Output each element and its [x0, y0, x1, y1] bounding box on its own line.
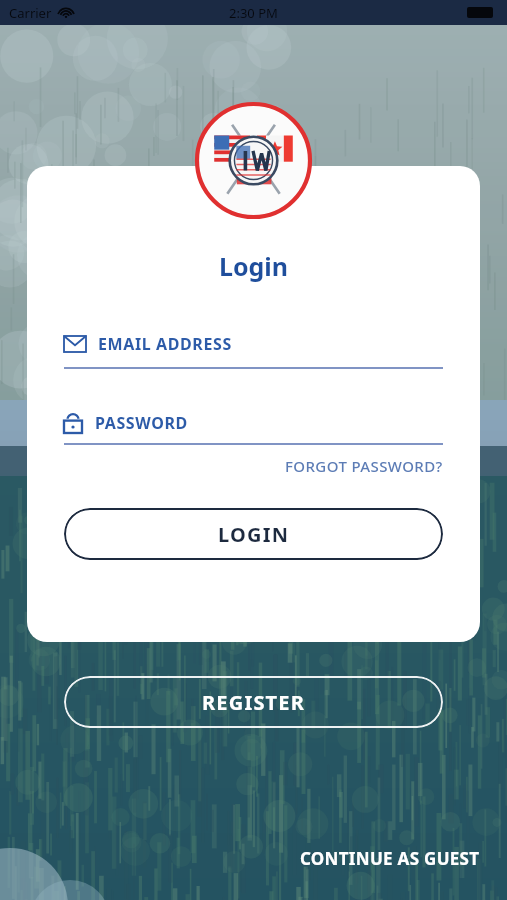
button[interactable]: REGISTER — [64, 676, 443, 728]
staticText: REGISTER — [202, 689, 306, 716]
staticText: Carrier — [9, 4, 52, 22]
button[interactable]: FORGOT PASSWORD? — [285, 456, 443, 476]
staticText: PASSWORD — [95, 412, 188, 434]
staticText: 2:30 PM — [229, 4, 278, 22]
staticText: Login — [27, 249, 480, 283]
button[interactable]: PASSWORD — [64, 412, 443, 445]
button[interactable]: EMAIL ADDRESS — [64, 333, 443, 369]
staticText: EMAIL ADDRESS — [98, 333, 232, 355]
staticText: CONTINUE AS GUEST — [300, 847, 480, 870]
button[interactable]: LOGIN — [64, 508, 443, 560]
button[interactable]: CONTINUE AS GUEST — [300, 847, 480, 870]
other: Union logo — [194, 101, 313, 220]
staticText: LOGIN — [218, 521, 290, 548]
